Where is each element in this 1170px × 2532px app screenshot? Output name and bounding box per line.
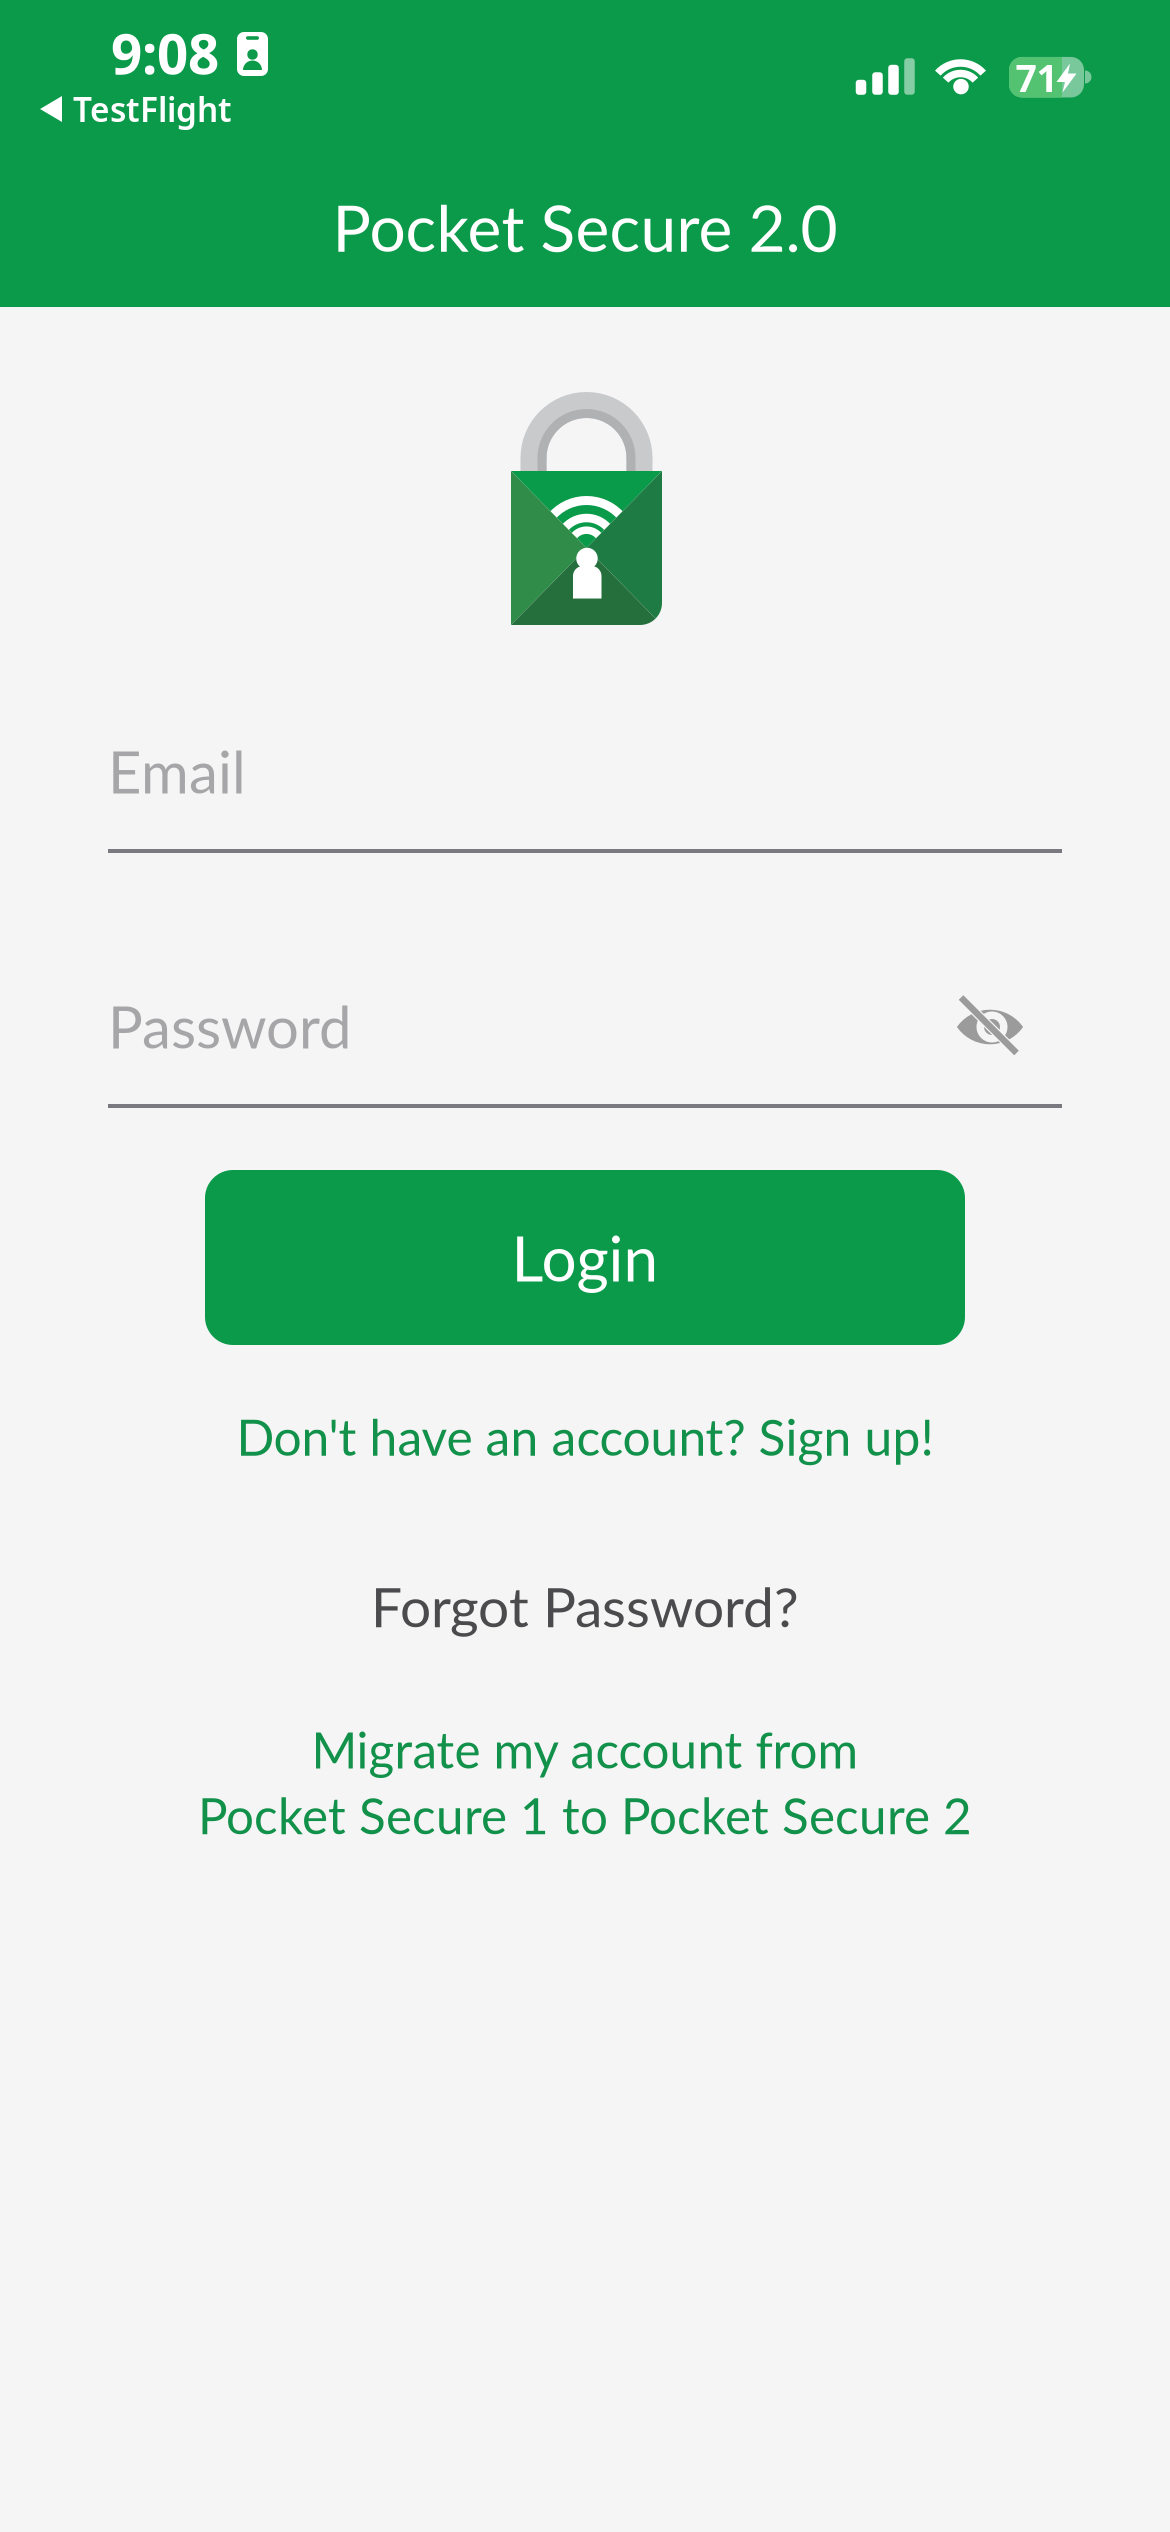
staticText: Email [108,736,246,806]
staticText: 71 [1015,53,1057,102]
button[interactable]: Migrate my account from [198,1720,972,1845]
button[interactable]: Email [0,697,1170,857]
staticText: Migrate my account from [311,1720,858,1779]
button[interactable]: Forgot Password? [371,1573,799,1639]
staticText: Pocket Secure 2.0 [332,189,837,265]
button[interactable]: TestFlight [40,87,320,131]
staticText: Pocket Secure 1 to Pocket Secure 2 [198,1785,972,1845]
staticText: TestFlight [73,87,232,131]
staticText: Login [511,1220,658,1295]
staticText: Forgot Password? [371,1573,799,1639]
button[interactable]: Show password [945,987,1035,1067]
button[interactable]: Don't have an account? Sign up! [236,1407,933,1466]
staticText: Password [108,991,351,1061]
staticText: 9:08 [111,17,219,89]
button[interactable]: Login [205,1170,965,1345]
staticText: Don't have an account? Sign up! [236,1407,933,1466]
button[interactable]: Password [0,952,1170,1112]
